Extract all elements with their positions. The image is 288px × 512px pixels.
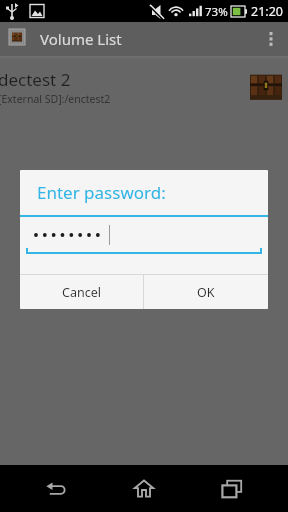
- staticText: Volume List: [40, 29, 122, 49]
- button[interactable]: More options: [258, 22, 284, 56]
- staticText: Cancel: [62, 284, 101, 301]
- button[interactable]: dectest 2: [0, 61, 288, 113]
- staticText: OK: [197, 284, 215, 301]
- button[interactable]: Home: [112, 465, 176, 512]
- staticText: Enter password:: [37, 181, 166, 204]
- button[interactable]: [20, 217, 268, 256]
- staticText: 73%: [205, 4, 228, 20]
- button[interactable]: OK: [144, 275, 268, 309]
- staticText: dectest 2: [0, 68, 71, 91]
- staticText: [External SD]:/enctest2: [0, 92, 111, 106]
- staticText: 21:20: [251, 3, 283, 20]
- button[interactable]: Cancel: [20, 275, 143, 309]
- button[interactable]: Recent apps: [200, 465, 264, 512]
- button[interactable]: Back: [24, 465, 88, 512]
